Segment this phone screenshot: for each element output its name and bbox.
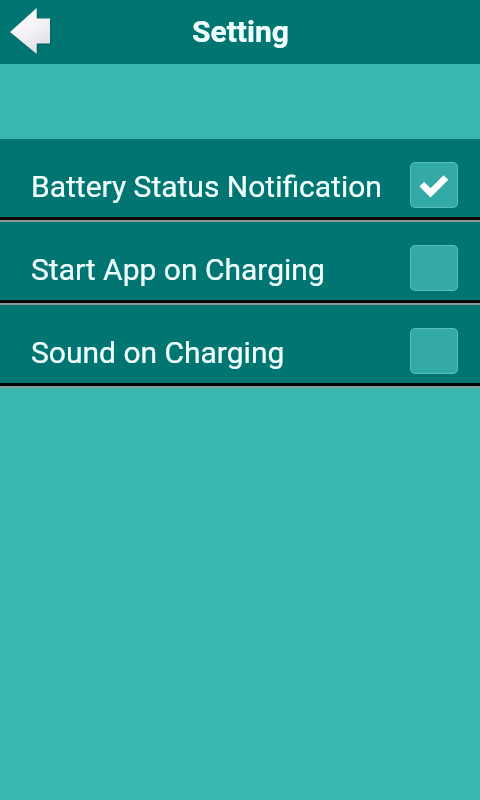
button[interactable]: Battery Status Notification, checked bbox=[410, 162, 458, 208]
button[interactable]: Sound on Charging, not checked bbox=[410, 328, 458, 374]
button[interactable]: Start App on Charging bbox=[0, 222, 480, 300]
staticText: Sound on Charging bbox=[31, 335, 410, 370]
button[interactable]: Start App on Charging, not checked bbox=[410, 245, 458, 291]
button[interactable]: Back bbox=[10, 8, 50, 54]
button[interactable]: Sound on Charging bbox=[0, 305, 480, 383]
staticText: Setting bbox=[192, 14, 289, 49]
staticText: Start App on Charging bbox=[31, 252, 410, 287]
button[interactable]: Battery Status Notification bbox=[0, 139, 480, 217]
staticText: Battery Status Notification bbox=[31, 169, 410, 204]
